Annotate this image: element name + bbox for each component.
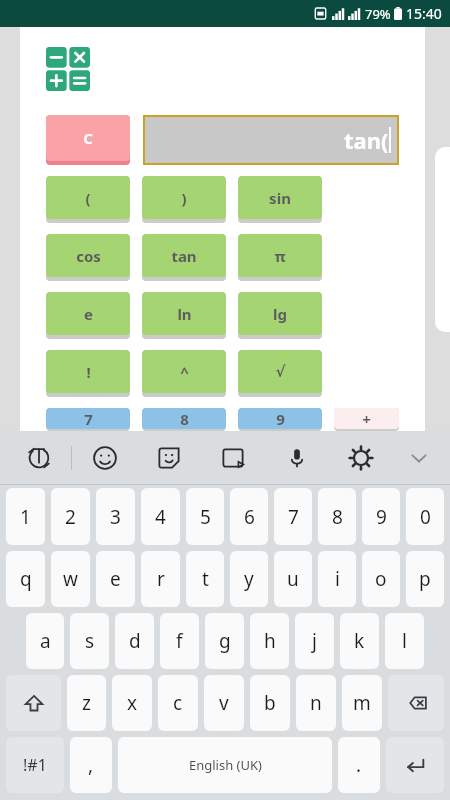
button[interactable]: r [141, 551, 180, 607]
staticText: 8 [180, 409, 189, 429]
staticText: a [40, 628, 51, 654]
button[interactable]: Settings [329, 431, 393, 485]
other: Calculator [46, 47, 90, 91]
button[interactable]: English (UK) [118, 737, 332, 793]
button[interactable]: 8 [142, 408, 226, 431]
staticText: j [312, 628, 317, 654]
staticText: v [219, 690, 229, 716]
button[interactable]: s [70, 613, 109, 669]
button[interactable]: e [96, 551, 135, 607]
button[interactable]: . [338, 737, 380, 793]
button[interactable]: Enter [386, 737, 444, 793]
button[interactable]: j [295, 613, 334, 669]
button[interactable]: Backspace [388, 675, 444, 731]
staticText: + [362, 409, 371, 429]
button[interactable]: √ [238, 350, 322, 397]
button[interactable]: 9 [238, 408, 322, 431]
staticText: n [310, 690, 322, 716]
staticText: i [335, 566, 340, 592]
staticText: 6 [244, 504, 255, 530]
button[interactable]: ( [46, 176, 130, 223]
staticText: z [82, 690, 91, 716]
staticText: e [110, 566, 121, 592]
button[interactable]: C [46, 115, 130, 165]
button[interactable]: v [204, 675, 244, 731]
button[interactable]: o [362, 551, 400, 607]
button[interactable]: b [250, 675, 290, 731]
button[interactable]: n [296, 675, 336, 731]
staticText: English (UK) [189, 756, 262, 774]
button[interactable]: p [406, 551, 444, 607]
button[interactable]: 2 [51, 488, 90, 545]
staticText: 15:40 [406, 4, 442, 23]
button[interactable]: c [158, 675, 198, 731]
button[interactable]: h [250, 613, 289, 669]
button[interactable]: ln [142, 292, 226, 339]
button[interactable]: ^ [142, 350, 226, 397]
button[interactable]: ) [142, 176, 226, 223]
button[interactable]: t [186, 551, 224, 607]
staticText: e [84, 304, 93, 324]
button[interactable]: k [340, 613, 379, 669]
button[interactable]: e [46, 292, 130, 339]
button[interactable]: ! [46, 350, 130, 397]
staticText: u [287, 566, 299, 592]
staticText: !#1 [23, 754, 47, 776]
button[interactable]: lg [238, 292, 322, 339]
button[interactable]: tan [142, 234, 226, 281]
button[interactable]: y [230, 551, 268, 607]
button[interactable]: 3 [96, 488, 135, 545]
staticText: C [83, 128, 93, 148]
button[interactable]: 0 [406, 488, 444, 545]
staticText: 0 [420, 504, 431, 530]
button[interactable]: a [26, 613, 64, 669]
button[interactable]: l [385, 613, 424, 669]
button[interactable]: Translate [6, 431, 71, 485]
staticText: tan [171, 246, 197, 266]
staticText: d [129, 628, 141, 654]
button[interactable]: 6 [230, 488, 268, 545]
staticText: l [402, 628, 407, 654]
button[interactable]: d [115, 613, 154, 669]
button[interactable]: !#1 [6, 737, 64, 793]
button[interactable]: Emoji [72, 431, 137, 485]
staticText: 9 [276, 409, 285, 429]
button[interactable]: Hide keyboard [393, 431, 444, 485]
button[interactable]: x [112, 675, 152, 731]
staticText: f [176, 628, 183, 654]
staticText: ) [181, 188, 187, 208]
staticText: ^ [180, 362, 189, 382]
staticText: s [85, 628, 95, 654]
button[interactable]: Stickers [137, 431, 201, 485]
staticText: m [353, 690, 371, 716]
button[interactable]: f [160, 613, 199, 669]
button[interactable]: Voice input [265, 431, 329, 485]
button[interactable]: 4 [141, 488, 180, 545]
staticText: 4 [155, 504, 166, 530]
button[interactable]: GIF [201, 431, 265, 485]
button[interactable]: π [238, 234, 322, 281]
button[interactable]: + [334, 408, 399, 431]
button[interactable]: i [318, 551, 356, 607]
button[interactable]: tan( [145, 117, 397, 163]
staticText: 3 [110, 504, 121, 530]
button[interactable]: 9 [362, 488, 400, 545]
button[interactable]: q [6, 551, 45, 607]
button[interactable]: 5 [186, 488, 224, 545]
staticText: g [219, 628, 231, 654]
button[interactable]: cos [46, 234, 130, 281]
button[interactable]: 7 [274, 488, 312, 545]
button[interactable]: Shift [6, 675, 61, 731]
button[interactable]: u [274, 551, 312, 607]
button[interactable]: g [205, 613, 244, 669]
staticText: c [173, 690, 183, 716]
button[interactable]: 7 [46, 408, 130, 431]
button[interactable]: w [51, 551, 90, 607]
button[interactable]: 8 [318, 488, 356, 545]
button[interactable]: 1 [6, 488, 45, 545]
button[interactable]: z [67, 675, 106, 731]
button[interactable]: m [342, 675, 382, 731]
button[interactable]: sin [238, 176, 322, 223]
button[interactable]: , [70, 737, 112, 793]
staticText: k [354, 628, 365, 654]
